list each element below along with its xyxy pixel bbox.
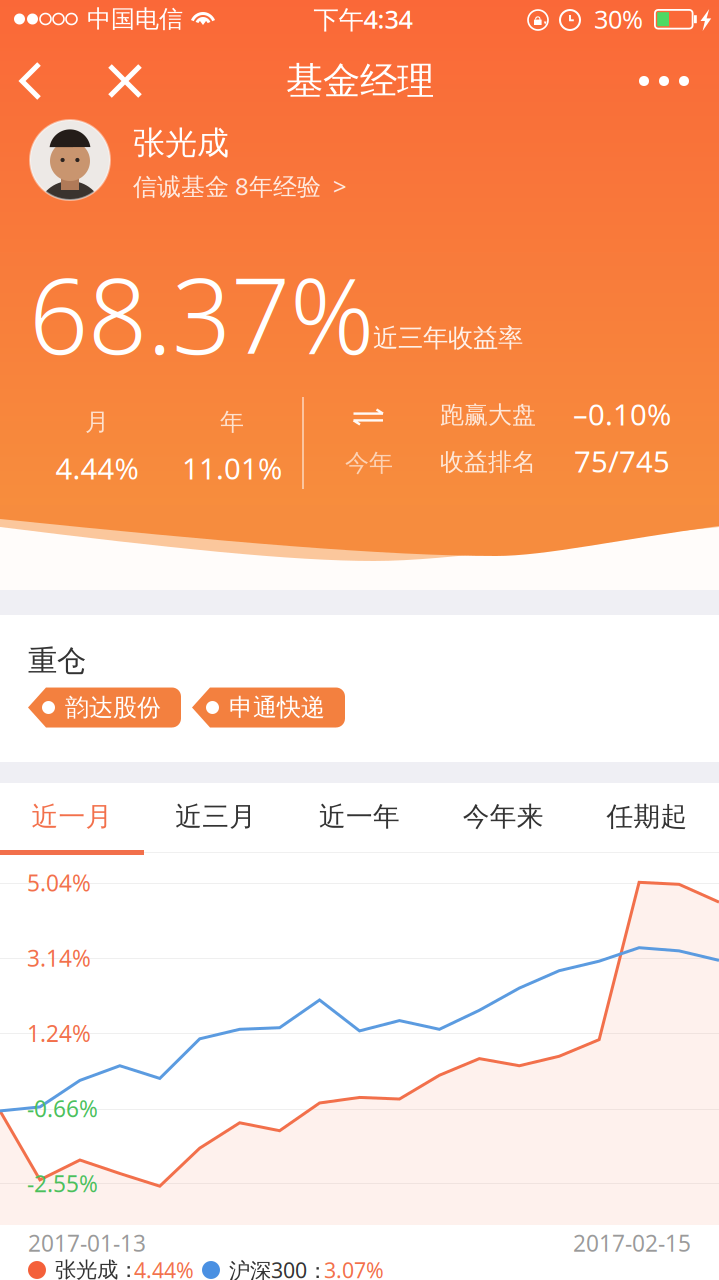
staticText: 11.01% xyxy=(182,448,282,487)
staticText: 75/745 xyxy=(574,441,670,480)
staticText: -2.55% xyxy=(27,1168,98,1198)
button[interactable]: 韵达股份 xyxy=(28,687,181,727)
staticText: 5.04% xyxy=(27,868,91,898)
staticText: 近三月 xyxy=(175,800,256,833)
staticText: 中国电信 xyxy=(87,4,183,34)
staticText: 信诚基金 8年经验 > xyxy=(133,170,347,202)
button[interactable]: 张光成 信诚基金 8年经验 xyxy=(20,112,440,208)
staticText: 跑赢大盘 xyxy=(440,400,536,430)
staticText: 近一年 xyxy=(319,800,400,833)
staticText: 68.37% xyxy=(29,245,374,383)
staticText: 任期起 xyxy=(607,800,688,833)
staticText: 今年 xyxy=(345,448,393,478)
button[interactable]: Back xyxy=(0,49,62,113)
button[interactable]: 任期起 xyxy=(575,783,719,850)
button[interactable]: 近一月 xyxy=(0,783,144,850)
staticText: 沪深300： xyxy=(229,1256,328,1280)
staticText: 重仓 xyxy=(28,643,86,679)
staticText: 张光成 xyxy=(133,123,229,163)
staticText: 张光成： xyxy=(55,1257,139,1280)
staticText: 4.44% xyxy=(55,448,138,487)
button[interactable]: More xyxy=(625,53,703,109)
staticText: 收益排名 xyxy=(440,447,536,477)
button[interactable]: 近一年 xyxy=(288,783,431,850)
staticText: 今年来 xyxy=(463,800,544,833)
staticText: –0.10% xyxy=(573,394,671,433)
staticText: 近三年收益率 xyxy=(373,322,523,353)
button[interactable]: Close xyxy=(93,49,157,113)
button[interactable]: 申通快递 xyxy=(192,687,345,727)
staticText: 1.24% xyxy=(27,1018,91,1048)
staticText: 2017-01-13 xyxy=(28,1228,146,1258)
button[interactable]: 近三月 xyxy=(144,783,288,850)
staticText: -0.66% xyxy=(27,1093,98,1124)
staticText: 30% xyxy=(594,2,643,36)
staticText: 3.14% xyxy=(27,943,91,973)
staticText: 申通快递 xyxy=(229,693,325,722)
staticText: 3.07% xyxy=(324,1256,384,1280)
staticText: 2017-02-15 xyxy=(573,1228,691,1258)
staticText: 基金经理 xyxy=(286,58,434,104)
staticText: 近一月 xyxy=(31,800,112,833)
button[interactable]: 今年来 xyxy=(431,783,575,850)
staticText: 韵达股份 xyxy=(65,693,161,722)
staticText: 下午4:34 xyxy=(313,2,412,36)
staticText: 月 xyxy=(85,407,109,437)
staticText: 4.44% xyxy=(134,1256,194,1280)
staticText: 年 xyxy=(220,407,244,437)
